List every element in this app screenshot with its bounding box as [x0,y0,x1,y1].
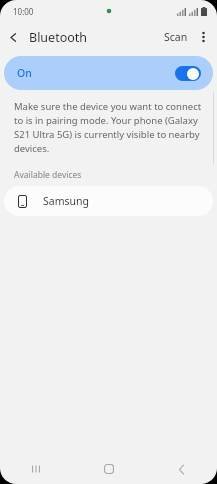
staticText: Bluetooth [29,29,88,46]
staticText: Make sure the device you want to connect… [14,100,203,155]
staticText: Scan [164,30,188,44]
button[interactable]: Back [0,24,26,50]
staticText: Samsung [43,194,89,208]
staticText: 10:00 [13,6,34,17]
button[interactable]: Recents [0,454,73,484]
staticText: On [17,66,32,80]
button[interactable]: Home [73,454,145,484]
button[interactable]: Samsung [4,186,213,216]
staticText: Available devices [14,169,82,181]
button[interactable]: Back [145,454,217,484]
button[interactable]: On [4,56,213,90]
button[interactable]: Scan [160,26,192,48]
button[interactable]: More options [192,26,214,48]
